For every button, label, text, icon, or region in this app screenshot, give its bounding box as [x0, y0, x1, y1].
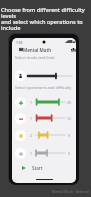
staticText: Select operations and difficulty — [15, 85, 72, 90]
staticText: Choose from different difficulty levels … — [1, 6, 91, 32]
staticText: 1 — [30, 116, 32, 121]
button[interactable]: 1 — [15, 95, 73, 109]
button[interactable]: Open navigation menu — [16, 45, 25, 54]
staticText: Mental Math · Android — [52, 189, 89, 194]
staticText: 20 — [67, 100, 71, 105]
button[interactable]: 1 — [15, 146, 73, 160]
staticText: 12 — [67, 116, 71, 121]
staticText: 1 — [30, 100, 32, 105]
staticText: 1 — [30, 151, 32, 156]
button[interactable]: 1 — [15, 111, 73, 125]
button[interactable]: Leaderboard — [68, 45, 76, 55]
staticText: 9 — [68, 133, 70, 138]
button[interactable] — [15, 69, 72, 82]
staticText: 1:05 — [16, 40, 23, 45]
staticText: Select mode and limit — [15, 55, 55, 60]
button[interactable]: 2 — [15, 128, 73, 142]
staticText: 2 — [30, 133, 32, 138]
staticText: Start — [32, 165, 43, 171]
staticText: Mental Math — [23, 47, 52, 53]
staticText: 9 — [68, 151, 70, 156]
button[interactable]: Start — [12, 162, 76, 174]
